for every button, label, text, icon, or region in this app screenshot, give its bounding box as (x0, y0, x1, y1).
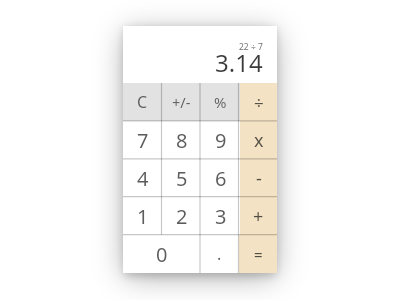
staticText: - (256, 166, 262, 191)
staticText: % (214, 92, 227, 112)
staticText: . (217, 243, 222, 265)
staticText: 22 ÷ 7 (239, 41, 263, 53)
staticText: 3.14 (215, 46, 263, 79)
staticText: 8 (176, 127, 188, 154)
button[interactable]: . (200, 235, 239, 273)
staticText: + (253, 204, 264, 229)
button[interactable]: = (239, 235, 277, 273)
staticText: 6 (215, 165, 227, 192)
staticText: 9 (215, 127, 227, 154)
staticText: 4 (137, 165, 149, 192)
button[interactable]: C (123, 83, 162, 121)
button[interactable]: + (240, 197, 277, 235)
button[interactable]: % (201, 83, 240, 121)
button[interactable]: 6 (201, 159, 240, 197)
staticText: 0 (156, 241, 168, 268)
staticText: +/- (172, 92, 191, 112)
button[interactable]: 1 (123, 197, 162, 235)
button[interactable]: 4 (123, 159, 162, 197)
button[interactable]: 8 (162, 121, 201, 159)
button[interactable]: 9 (201, 121, 240, 159)
staticText: 1 (137, 203, 149, 230)
staticText: ÷ (254, 91, 264, 114)
button[interactable]: +/- (162, 83, 201, 121)
staticText: 5 (176, 165, 188, 192)
button[interactable]: 2 (162, 197, 201, 235)
button[interactable]: 3 (201, 197, 240, 235)
staticText: 2 (176, 203, 188, 230)
staticText: 3 (215, 203, 227, 230)
button[interactable]: ÷ (240, 83, 277, 121)
button[interactable]: x (240, 121, 277, 159)
button[interactable]: 5 (162, 159, 201, 197)
button[interactable]: 7 (123, 121, 162, 159)
staticText: C (137, 91, 148, 113)
staticText: = (254, 244, 263, 264)
staticText: x (254, 128, 264, 153)
button[interactable]: - (240, 159, 277, 197)
staticText: 7 (137, 127, 149, 154)
button[interactable]: 0 (123, 235, 200, 273)
